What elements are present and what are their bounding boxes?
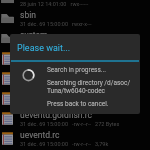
button[interactable]: sbin [0,8,150,28]
button[interactable]: bin [0,0,150,8]
staticText: init.goldfish.rc [20,90,74,100]
staticText: 31 déc. 69 15:00:00 rwxr-xr-x [20,41,94,47]
staticText: sbin [20,10,36,20]
button[interactable]: ueventd.goldfish.rc [0,108,150,128]
staticText: 31 déc. 69 15:00:00 rwxr-x--- [20,21,92,27]
staticText: Please wait... [17,43,71,54]
staticText: 31 déc. 69 15:00:00 -rw-r--r-- 272 Bytes [20,121,120,127]
staticText: 31 déc. 69 15:00:00 -rw-r--r-- 118 Bytes [20,81,120,87]
staticText: 31 déc. 69 15:00:00 -rw-r--r-- 18,4k [20,61,109,67]
staticText: ueventd.goldfish.rc [20,110,92,120]
staticText: 31 déc. 69 15:00:00 -rw-r--r-- 3,79k [20,141,109,147]
button[interactable]: default.prop [0,68,150,88]
staticText: 28 juin 12 14:01:00 rwx------ [20,1,89,7]
staticText: 31 déc. 69 15:00:00 -rw-r--r-- 1,15k [20,101,109,107]
button[interactable]: init.goldfish.rc [0,88,150,108]
staticText: init.rc [20,50,42,60]
staticText: system [20,30,48,40]
staticText: Press back to cancel. [47,100,109,108]
staticText: Tuna/tw6040-codec [47,87,106,95]
staticText: ueventd.rc [20,130,60,140]
staticText: default.prop [20,70,66,80]
button[interactable]: ueventd.rc [0,128,150,148]
staticText: Search in progress... [47,66,106,74]
staticText: Searching directory /d/asoc/ [47,79,131,87]
button[interactable]: system [0,28,150,48]
button[interactable]: init.rc [0,48,150,68]
